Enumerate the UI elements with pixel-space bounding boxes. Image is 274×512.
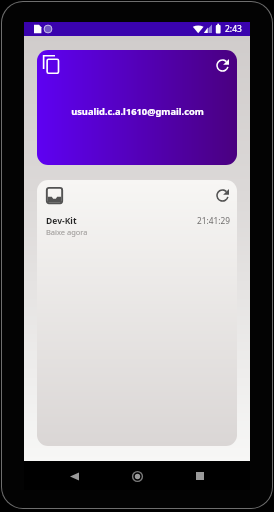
button[interactable]: Back [61,463,87,489]
button[interactable]: Copy e-mail address [37,50,237,165]
staticText: Baixe agora [46,227,88,237]
staticText: Dev-Kit [46,215,77,227]
button[interactable]: Refresh [210,53,234,77]
button[interactable]: Recent apps [187,463,213,489]
button[interactable]: Dev-Kit [46,215,230,237]
button[interactable]: Refresh messages [211,184,233,206]
button[interactable]: Home [124,463,150,489]
button[interactable]: Copy e-mail address [39,52,63,76]
staticText: 2:43 [225,23,242,35]
staticText: 21:41:29 [197,215,230,226]
button[interactable]: Inbox [42,183,66,207]
staticText: usualid.c.a.l1610@gmail.com [71,105,204,118]
